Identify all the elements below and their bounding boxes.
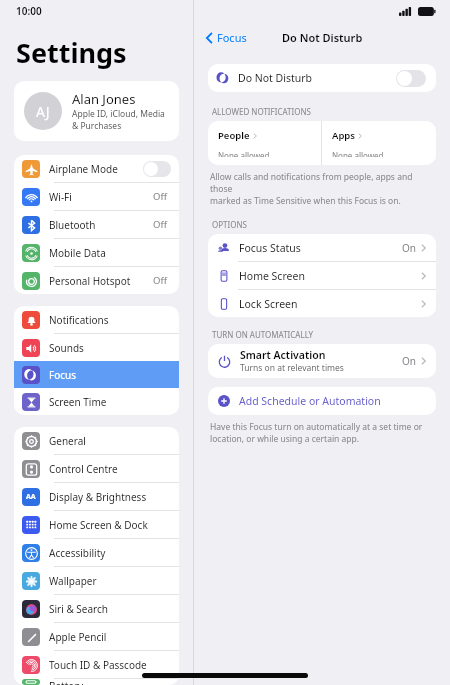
staticText: OPTIONS	[212, 219, 247, 230]
staticText: Have this Focus turn on automatically at…	[210, 421, 423, 445]
staticText: Wallpaper	[49, 574, 171, 588]
staticText: Home Screen	[239, 269, 421, 283]
button[interactable]: Personal Hotspot	[14, 267, 179, 294]
staticText: Display & Brightness	[49, 490, 171, 504]
button[interactable]: Siri & Search	[14, 595, 179, 622]
button[interactable]: General	[14, 427, 179, 454]
staticText: AA	[26, 492, 36, 502]
button[interactable]: AJ	[14, 81, 179, 141]
button[interactable]: Focus Status	[208, 234, 436, 261]
button[interactable]: Airplane Mode toggle	[143, 161, 171, 177]
staticText: Notifications	[49, 313, 171, 327]
staticText: Siri & Search	[49, 602, 171, 616]
staticText: People	[218, 129, 250, 142]
button[interactable]: People	[208, 121, 321, 165]
staticText: Allow calls and notifications from peopl…	[210, 171, 434, 207]
button[interactable]: Focus	[204, 28, 249, 47]
staticText: Mobile Data	[49, 246, 171, 260]
button[interactable]: Accessibility	[14, 539, 179, 566]
staticText: Apps	[332, 129, 355, 142]
staticText: Do Not Disturb	[238, 71, 396, 85]
staticText: Sounds	[49, 341, 171, 355]
staticText: None allowed	[218, 150, 270, 157]
button[interactable]: Touch ID & Passcode	[14, 651, 179, 678]
staticText: Off	[153, 274, 167, 287]
staticText: Add Schedule or Automation	[239, 394, 381, 408]
staticText: Focus	[49, 368, 171, 382]
button[interactable]: Home Screen	[208, 262, 436, 289]
staticText: Do Not Disturb	[282, 30, 363, 45]
staticText: Focus	[217, 30, 247, 45]
staticText: Airplane Mode	[49, 162, 143, 176]
button[interactable]: Sounds	[14, 334, 179, 361]
staticText: Battery	[49, 679, 171, 685]
button[interactable]: Wi-Fi	[14, 183, 179, 210]
staticText: On	[402, 241, 416, 255]
staticText: Accessibility	[49, 546, 171, 560]
staticText: Focus Status	[239, 241, 402, 255]
button[interactable]: Battery	[14, 679, 179, 685]
staticText: Control Centre	[49, 462, 171, 476]
button[interactable]: Notifications	[14, 306, 179, 333]
button[interactable]: Apple Pencil	[14, 623, 179, 650]
staticText: Wi-Fi	[49, 190, 153, 204]
staticText: AJ	[36, 102, 50, 121]
button[interactable]: Wallpaper	[14, 567, 179, 594]
staticText: Personal Hotspot	[49, 274, 153, 288]
staticText: Turns on at relevant times	[240, 362, 344, 374]
button[interactable]: Do Not Disturb	[208, 64, 436, 92]
staticText: None allowed	[332, 150, 384, 157]
staticText: Settings	[16, 34, 127, 71]
staticText: TURN ON AUTOMATICALLY	[212, 329, 314, 340]
button[interactable]: Airplane Mode	[14, 155, 179, 182]
staticText: Apple Pencil	[49, 630, 171, 644]
staticText: Screen Time	[49, 395, 171, 409]
staticText: Alan Jones	[72, 90, 136, 108]
button[interactable]: Lock Screen	[208, 290, 436, 317]
button[interactable]: Apps	[322, 121, 436, 165]
staticText: On	[402, 354, 416, 368]
button[interactable]: Add Schedule or Automation	[208, 387, 436, 415]
button[interactable]: Focus	[14, 361, 179, 388]
staticText: Smart Activation	[240, 348, 326, 362]
button[interactable]: Home Screen & Dock	[14, 511, 179, 538]
staticText: Home Screen & Dock	[49, 518, 171, 532]
button[interactable]: Bluetooth	[14, 211, 179, 238]
staticText: Bluetooth	[49, 218, 153, 232]
staticText: & Purchases	[72, 120, 122, 132]
staticText: Lock Screen	[239, 297, 421, 311]
button[interactable]: Mobile Data	[14, 239, 179, 266]
staticText: ALLOWED NOTIFICATIONS	[212, 106, 311, 117]
staticText: Off	[153, 218, 167, 231]
staticText: Touch ID & Passcode	[49, 658, 171, 672]
button[interactable]: Smart Activation	[208, 344, 436, 378]
button[interactable]: Do Not Disturb toggle	[396, 70, 426, 87]
staticText: Off	[153, 190, 167, 203]
button[interactable]: AA	[14, 483, 179, 510]
button[interactable]: Screen Time	[14, 388, 179, 415]
staticText: General	[49, 434, 171, 448]
button[interactable]: Control Centre	[14, 455, 179, 482]
staticText: 10:00	[16, 4, 42, 18]
staticText: Apple ID, iCloud, Media	[72, 108, 165, 120]
